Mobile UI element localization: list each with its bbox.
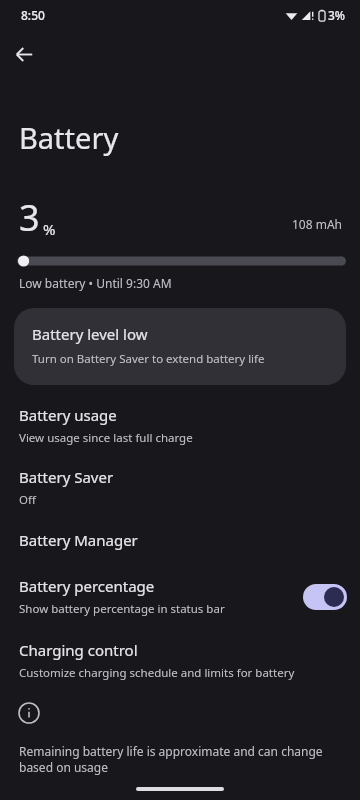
button[interactable]: Battery percentage <box>0 576 360 617</box>
staticText: Turn on Battery Saver to extend battery … <box>32 351 265 367</box>
staticText: 3 <box>19 193 40 242</box>
staticText: Battery Saver <box>19 467 114 487</box>
staticText: 3% <box>328 7 346 23</box>
staticText: Battery level low <box>32 324 148 344</box>
button[interactable]: Battery Manager <box>0 530 360 550</box>
staticText: 108 mAh <box>292 216 343 232</box>
button[interactable]: Battery level low <box>14 308 346 385</box>
button[interactable]: Back <box>9 39 40 70</box>
staticText: Low battery • Until 9:30 AM <box>19 275 172 291</box>
staticText: 8:50 <box>21 7 45 23</box>
staticText: Show battery percentage in status bar <box>19 601 225 617</box>
staticText: Battery Manager <box>19 530 138 550</box>
staticText: % <box>43 219 56 239</box>
staticText: Battery <box>19 118 119 157</box>
staticText: Customize charging schedule and limits f… <box>19 665 295 681</box>
other: Battery percentage toggle, on <box>303 584 347 610</box>
staticText: Charging control <box>19 640 138 660</box>
button[interactable]: Charging control <box>0 640 360 681</box>
staticText: Off <box>19 492 36 508</box>
button[interactable]: Battery Saver <box>0 467 360 508</box>
staticText: Battery percentage <box>19 576 155 596</box>
staticText: Battery usage <box>19 405 117 425</box>
button[interactable]: Battery usage <box>0 405 360 446</box>
staticText: Remaining battery life is approximate an… <box>19 743 340 776</box>
other: Information <box>18 702 40 724</box>
staticText: View usage since last full charge <box>19 430 193 446</box>
